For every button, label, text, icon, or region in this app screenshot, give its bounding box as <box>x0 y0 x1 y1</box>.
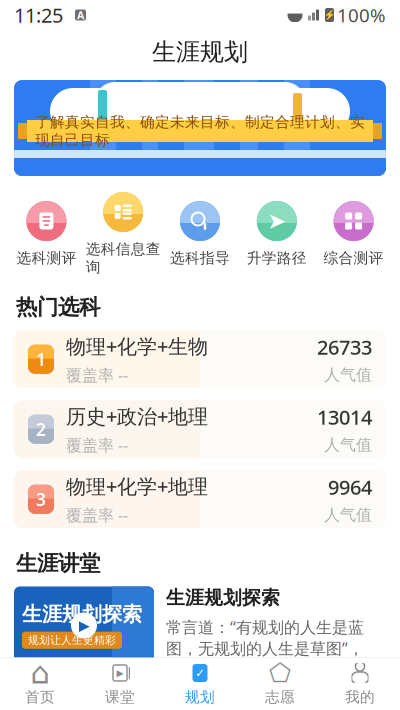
button[interactable]: 选科测评 <box>8 201 85 267</box>
staticText: 选科信息查询 <box>86 240 161 276</box>
staticText: 志愿 <box>265 688 295 706</box>
staticText: ⬠ <box>269 659 291 687</box>
staticText: 热门选科 <box>16 294 100 320</box>
staticText: 选科测评 <box>16 249 76 267</box>
button[interactable]: ⬠ <box>240 662 320 706</box>
staticText: 人气值 <box>324 365 372 385</box>
button[interactable]: 生涯规划探索 <box>14 586 386 680</box>
staticText: 1 <box>36 348 46 371</box>
staticText: 规划让人生更精彩 <box>28 634 116 647</box>
staticText: A <box>77 8 84 22</box>
staticText: 人气值 <box>324 505 372 525</box>
button[interactable]: 3 <box>14 470 386 528</box>
staticText: 覆盖率 -- <box>66 504 128 526</box>
staticText: 了解真实自我、确定未来目标、制定合理计划、实现自己目标 <box>35 113 365 149</box>
staticText: 人气值 <box>324 435 372 455</box>
staticText: 探索生涯规划 <box>113 90 287 126</box>
staticText: ⚡ <box>323 10 335 20</box>
staticText: ✓ <box>195 666 205 680</box>
staticText: 3 <box>36 488 46 511</box>
staticText: 历史+政治+地理 <box>66 403 208 429</box>
button[interactable]: 2 <box>14 400 386 458</box>
button[interactable]: ▶ <box>80 662 160 706</box>
staticText: ➤ <box>267 208 286 234</box>
staticText: 物理+化学+地理 <box>66 473 208 499</box>
staticText: 常言道：“有规划的人生是蓝图，无规划的人生是草图”，规划会让我们的人生更加… <box>166 616 364 680</box>
staticText: 我的 <box>345 688 375 706</box>
staticText: 物理+化学+生物 <box>66 333 208 359</box>
staticText: 生涯规划探索 <box>22 602 142 627</box>
staticText: 13014 <box>317 404 372 430</box>
button[interactable]: ➤ <box>238 201 315 267</box>
button[interactable]: 我的 <box>320 662 400 706</box>
staticText: 11:25 <box>14 2 63 28</box>
staticText: 100% <box>337 3 386 27</box>
staticText: 课堂 <box>105 688 135 706</box>
staticText: ▶ <box>78 617 89 634</box>
staticText: 26733 <box>317 334 372 360</box>
staticText: 9964 <box>328 474 372 500</box>
staticText: 2 <box>36 418 46 441</box>
staticText: 规划 <box>185 688 215 706</box>
staticText: 首页 <box>25 688 55 706</box>
button[interactable]: 选科信息查询 <box>85 192 162 276</box>
button[interactable]: 综合测评 <box>315 201 392 267</box>
button[interactable]: 探索生涯规划 <box>14 80 386 176</box>
staticText: 生涯规划探索 <box>166 586 280 609</box>
staticText: 升学路径 <box>247 249 307 267</box>
button[interactable]: 选科指导 <box>162 201 238 267</box>
staticText: 选科指导 <box>170 249 230 267</box>
staticText: 覆盖率 -- <box>66 434 128 456</box>
staticText: 生涯规划 <box>152 37 248 67</box>
staticText: 综合测评 <box>324 249 384 267</box>
staticText: 生涯讲堂 <box>16 550 100 576</box>
button[interactable]: ⌂ <box>0 662 80 706</box>
staticText: ▶ <box>116 668 123 678</box>
staticText: 覆盖率 -- <box>66 364 128 386</box>
staticText: ⌂ <box>30 656 49 690</box>
button[interactable]: 1 <box>14 330 386 388</box>
button[interactable]: ✓ <box>160 662 240 706</box>
